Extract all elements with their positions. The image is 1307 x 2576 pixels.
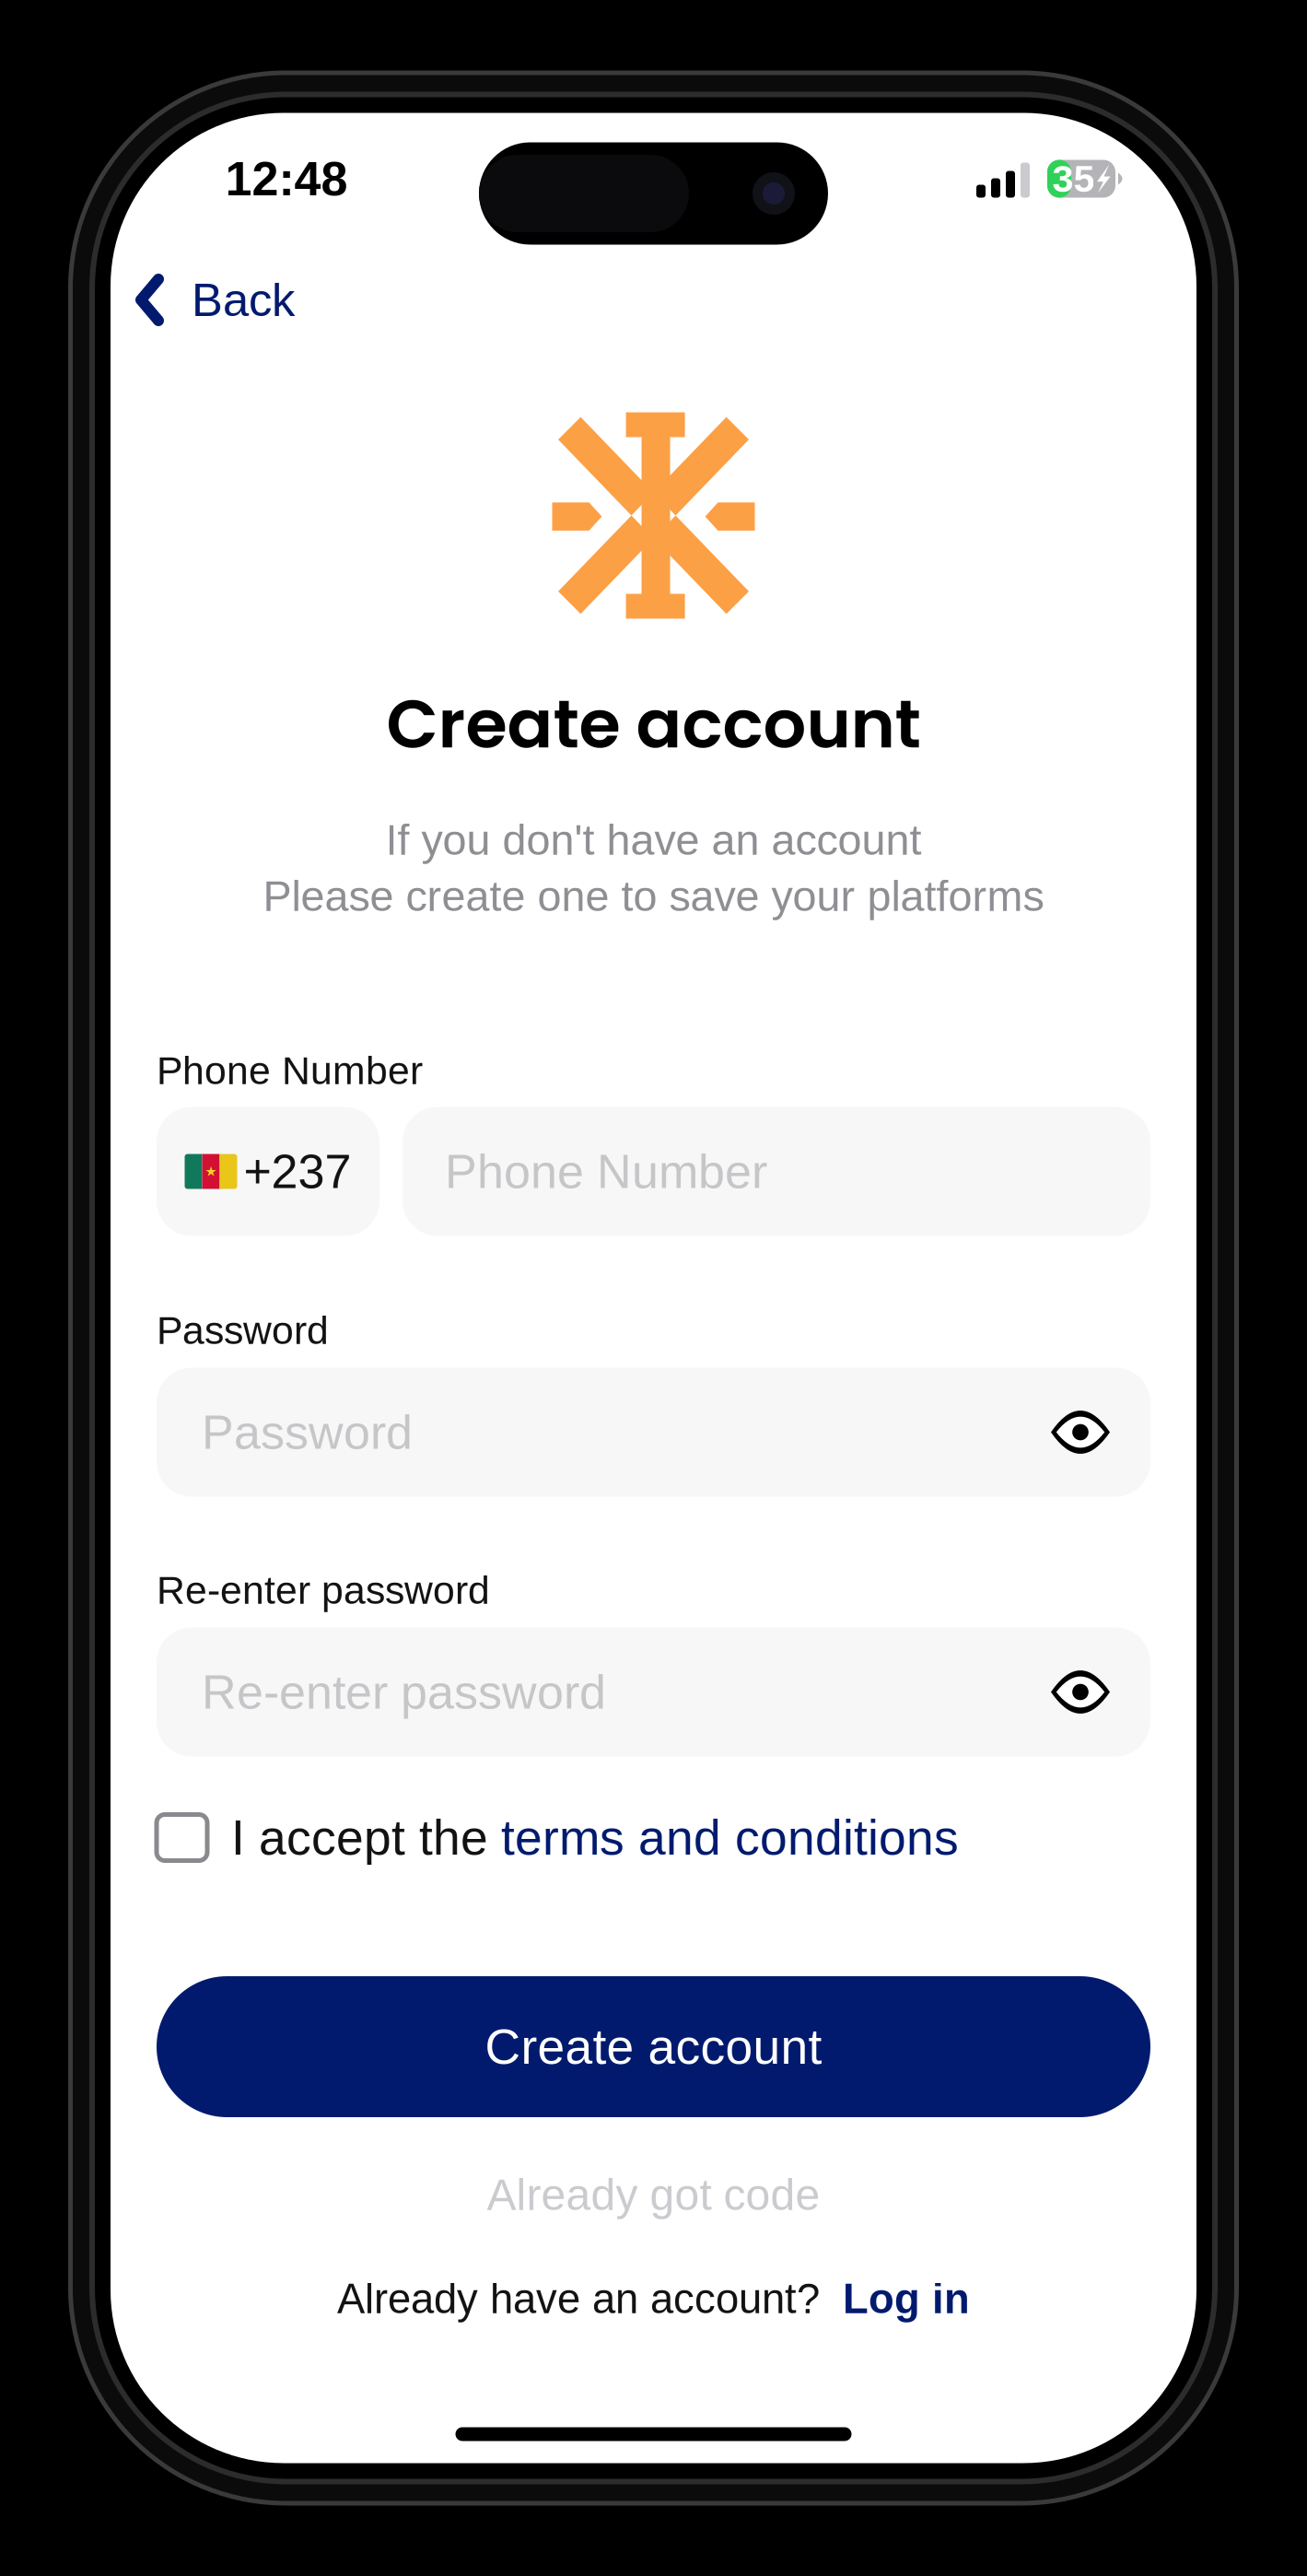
staticText: Create account bbox=[386, 676, 921, 771]
staticText: Re-enter password bbox=[202, 1665, 606, 1719]
staticText: Password bbox=[157, 1308, 329, 1352]
staticText: If you don't have an account bbox=[385, 816, 922, 864]
staticText: Re-enter password bbox=[157, 1568, 490, 1612]
staticText: +237 bbox=[244, 1145, 351, 1198]
staticText: Create account bbox=[485, 2019, 822, 2074]
staticText: terms and conditions bbox=[501, 1810, 959, 1865]
button[interactable]: Create account bbox=[157, 1976, 1150, 2117]
button[interactable]: Back bbox=[111, 245, 319, 355]
button[interactable]: Phone Number bbox=[403, 1107, 1150, 1236]
staticText: Back bbox=[192, 274, 295, 326]
staticText: Log in bbox=[843, 2275, 970, 2322]
button[interactable]: Password bbox=[157, 1368, 1150, 1497]
staticText: Phone Number bbox=[445, 1145, 767, 1198]
staticText: Phone Number bbox=[157, 1049, 423, 1093]
staticText: Password bbox=[202, 1405, 413, 1459]
staticText: 35 bbox=[1052, 157, 1095, 200]
button[interactable]: Already got code bbox=[487, 2171, 820, 2219]
staticText: Please create one to save your platforms bbox=[263, 872, 1044, 920]
button[interactable]: I accept the bbox=[157, 1805, 1150, 1870]
button[interactable]: Log in bbox=[820, 2275, 970, 2322]
staticText: Already have an account? bbox=[337, 2275, 820, 2322]
staticText: Already got code bbox=[487, 2170, 820, 2219]
staticText: ★ bbox=[205, 1164, 217, 1179]
button[interactable]: Re-enter password bbox=[157, 1628, 1150, 1756]
button[interactable]: Country code +237 bbox=[157, 1107, 379, 1236]
staticText: I accept the bbox=[231, 1810, 488, 1865]
staticText: 12:48 bbox=[225, 152, 348, 206]
